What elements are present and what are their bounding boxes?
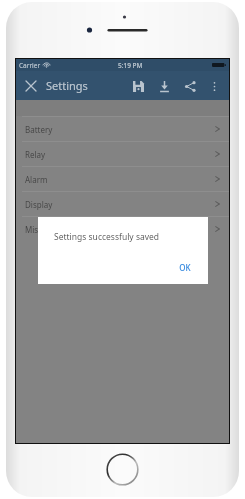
button[interactable]: Display: [16, 192, 229, 216]
staticText: Misc: [25, 224, 42, 235]
staticText: Carrier: [19, 61, 41, 70]
staticText: Settings: [46, 78, 88, 93]
other: Home: [106, 453, 139, 486]
staticText: Display: [25, 199, 53, 210]
staticText: Settings successfuly saved: [54, 231, 160, 243]
button[interactable]: More options: [204, 76, 224, 96]
button[interactable]: Alarm: [16, 167, 229, 191]
button[interactable]: Relay: [16, 142, 229, 166]
staticText: Battery: [25, 124, 53, 135]
staticText: Alarm: [25, 174, 48, 185]
staticText: OK: [179, 262, 191, 273]
button[interactable]: Battery: [16, 117, 229, 141]
button[interactable]: Save: [128, 76, 148, 96]
button[interactable]: Download: [154, 76, 174, 96]
button[interactable]: Share: [180, 76, 200, 96]
button[interactable]: Misc: [16, 217, 229, 241]
button[interactable]: Close: [21, 76, 41, 96]
staticText: 5:19 PM: [118, 61, 143, 70]
staticText: Relay: [25, 149, 46, 160]
button[interactable]: OK: [174, 260, 196, 275]
